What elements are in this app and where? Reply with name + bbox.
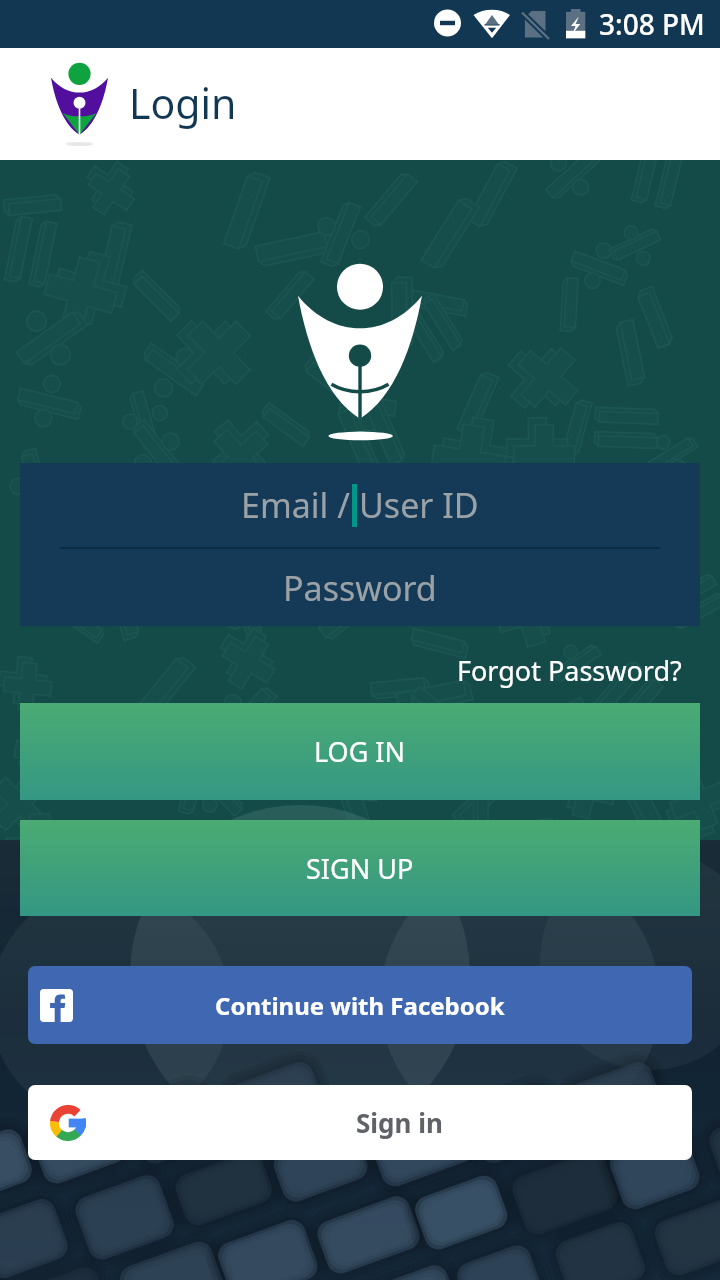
button[interactable]: Email / — [20, 463, 700, 547]
staticText: Forgot Password? — [457, 652, 682, 689]
staticText: Email / — [241, 482, 350, 528]
button[interactable]: LOG IN — [20, 703, 700, 800]
staticText: Continue with Facebook — [215, 989, 505, 1022]
staticText: Password — [283, 565, 437, 611]
staticText: LOG IN — [314, 733, 406, 770]
button[interactable]: Password — [20, 549, 700, 626]
button[interactable]: Forgot Password? — [437, 640, 701, 699]
staticText: 3:08 PM — [599, 5, 705, 43]
staticText: Sign in — [356, 1105, 443, 1140]
button[interactable]: SIGN UP — [20, 820, 700, 916]
staticText: SIGN UP — [306, 850, 414, 887]
staticText: User ID — [359, 482, 479, 528]
button[interactable]: Continue with Facebook — [28, 966, 692, 1044]
staticText: Login — [129, 75, 237, 131]
button[interactable]: Sign in — [28, 1085, 692, 1160]
